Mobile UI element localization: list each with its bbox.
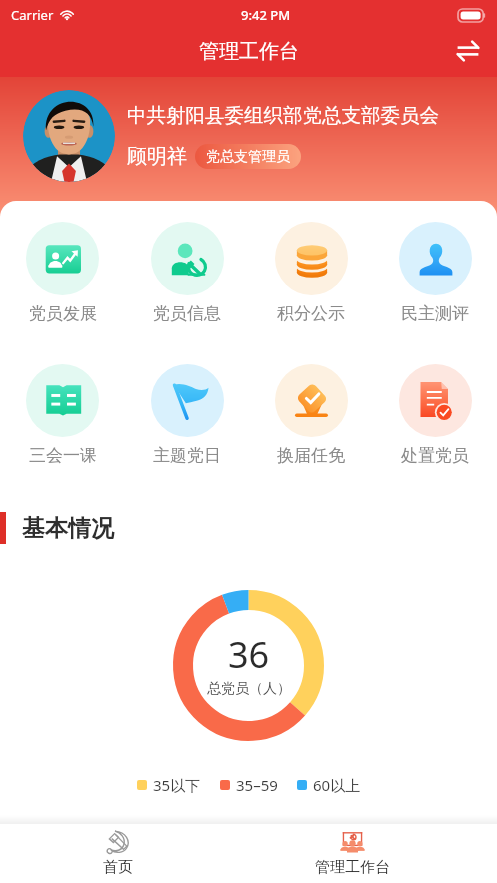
staticText: 党员发展 (29, 303, 97, 324)
staticText: 管理工作台 (315, 858, 390, 877)
staticText: 9:42 PM (241, 6, 291, 24)
button[interactable]: Switch organization (447, 30, 489, 72)
button[interactable]: 换届任免 (249, 364, 373, 466)
button[interactable]: 党总支管理员 (195, 144, 301, 169)
staticText: 三会一课 (29, 445, 97, 466)
button[interactable]: 三会一课 (0, 364, 125, 466)
staticText: 民主测评 (401, 303, 469, 324)
button[interactable]: 党员信息 (125, 222, 249, 324)
button[interactable]: 积分公示 (249, 222, 373, 324)
staticText: 总党员（人） (207, 680, 291, 698)
staticText: 36 (228, 630, 270, 679)
staticText: 换届任免 (277, 445, 345, 466)
button[interactable]: 处置党员 (373, 364, 497, 466)
staticText: 60以上 (313, 775, 361, 795)
staticText: 顾明祥 (127, 144, 187, 169)
button[interactable] (23, 90, 115, 182)
button[interactable]: 民主测评 (373, 222, 497, 324)
staticText: 35以下 (153, 775, 201, 795)
staticText: 积分公示 (277, 303, 345, 324)
staticText: 党员信息 (153, 303, 221, 324)
staticText: 处置党员 (401, 445, 469, 466)
staticText: 管理工作台 (199, 39, 299, 64)
staticText: 基本情况 (22, 514, 114, 543)
staticText: 35–59 (236, 775, 278, 795)
button[interactable]: 首页 (60, 824, 176, 883)
staticText: 主题党日 (153, 445, 221, 466)
staticText: 党总支管理员 (206, 148, 290, 166)
button[interactable]: 管理工作台 (294, 824, 410, 883)
staticText: 中共射阳县委组织部党总支部委员会 (127, 103, 439, 128)
button[interactable]: 党员发展 (0, 222, 125, 324)
staticText: Carrier (11, 6, 54, 24)
button[interactable]: 主题党日 (125, 364, 249, 466)
staticText: 首页 (103, 858, 133, 877)
